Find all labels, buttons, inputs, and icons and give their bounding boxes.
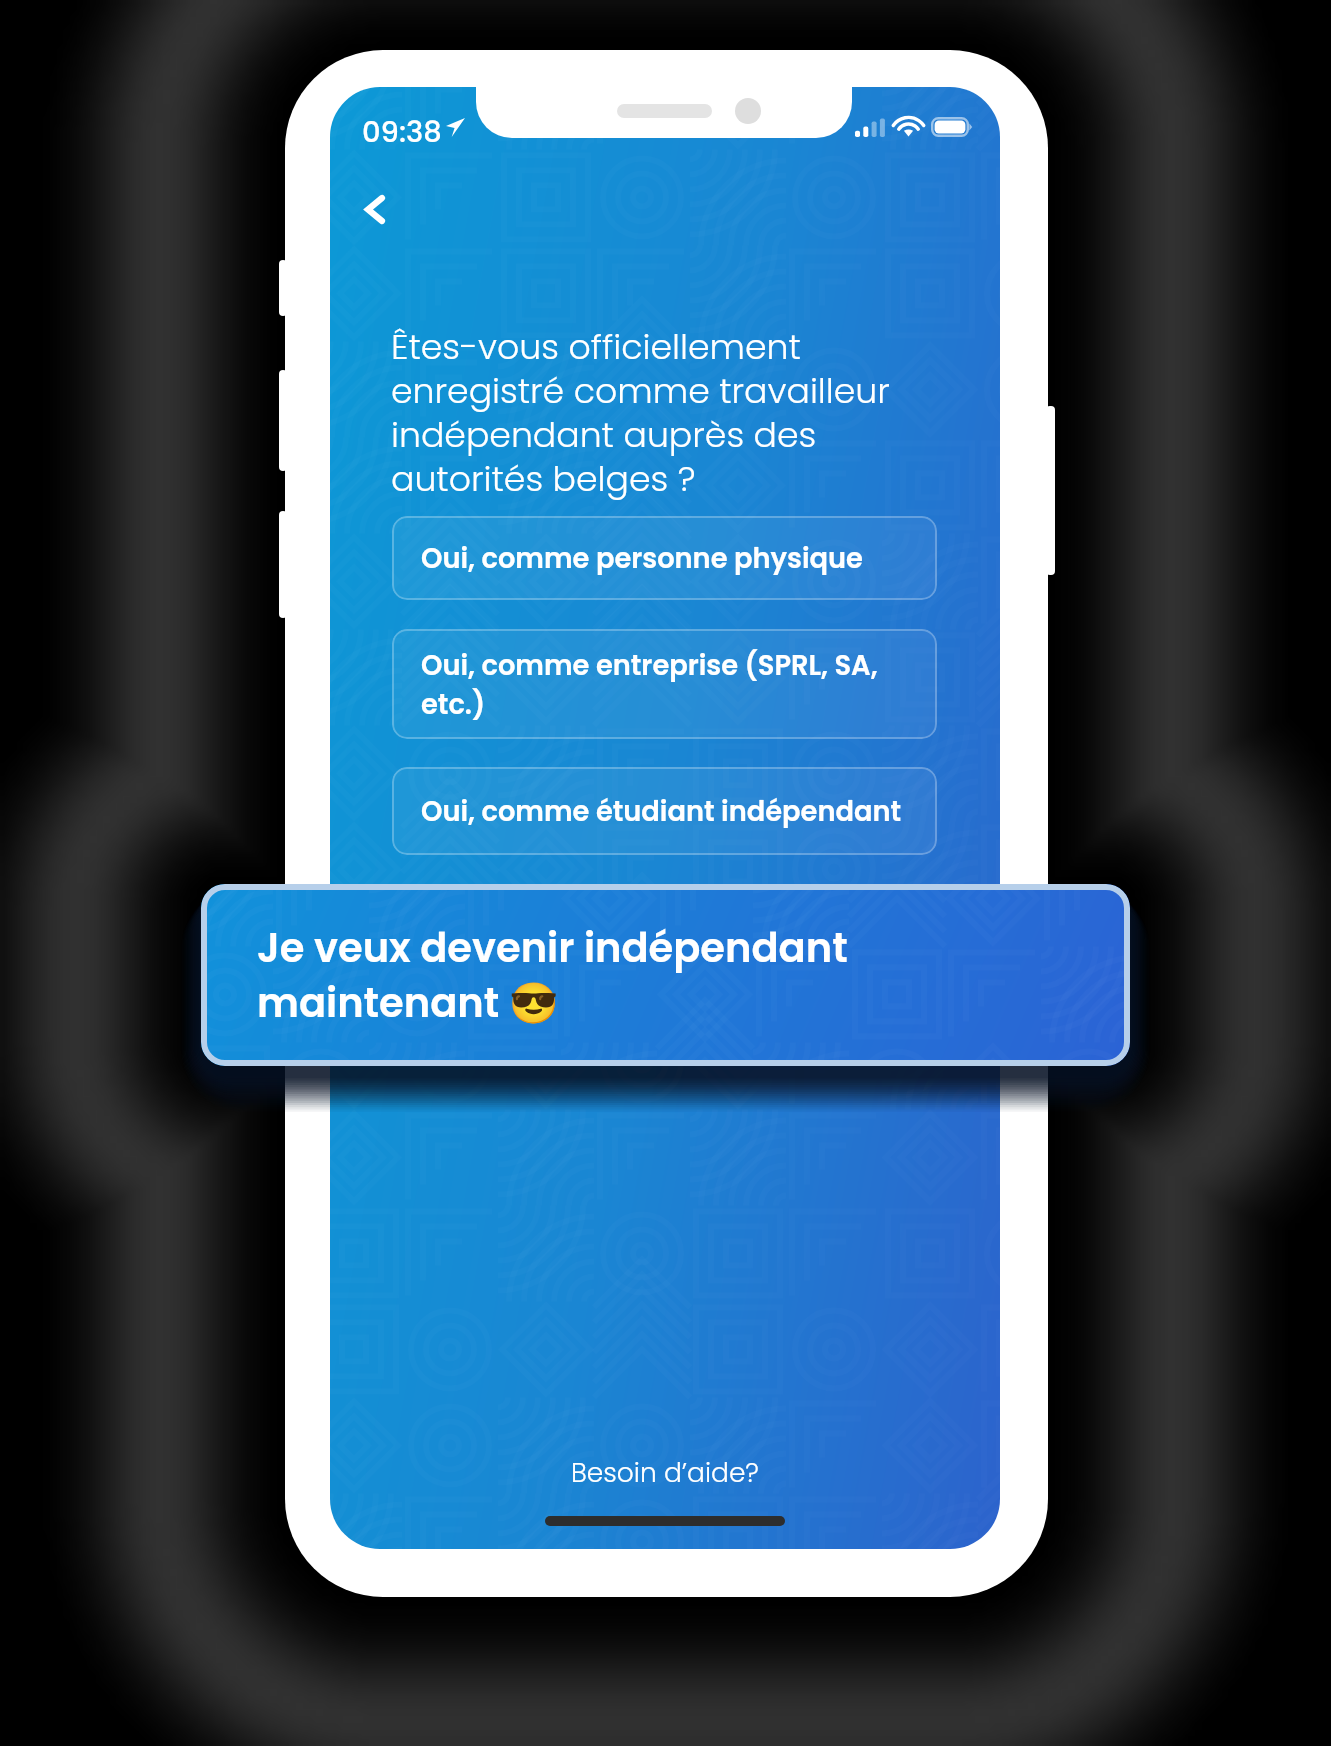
button[interactable]: Oui, comme étudiant indépendant: [392, 767, 937, 855]
staticText: 09:38: [362, 112, 442, 153]
staticText: Je veux devenir indépendant maintenant 😎: [257, 920, 848, 1031]
button[interactable]: Oui, comme entreprise (SPRL, SA, etc.): [392, 629, 937, 739]
button[interactable]: Besoin d’aide?: [571, 1454, 759, 1491]
staticText: Êtes-vous officiellement enregistré comm…: [391, 323, 897, 503]
button[interactable]: Back: [344, 179, 405, 240]
button[interactable]: Je veux devenir indépendant maintenant 😎: [201, 884, 1130, 1066]
staticText: Oui, comme personne physique: [421, 539, 863, 577]
staticText: Oui, comme entreprise (SPRL, SA, etc.): [421, 646, 923, 723]
staticText: Oui, comme étudiant indépendant: [421, 792, 902, 830]
button[interactable]: Oui, comme personne physique: [392, 516, 937, 600]
